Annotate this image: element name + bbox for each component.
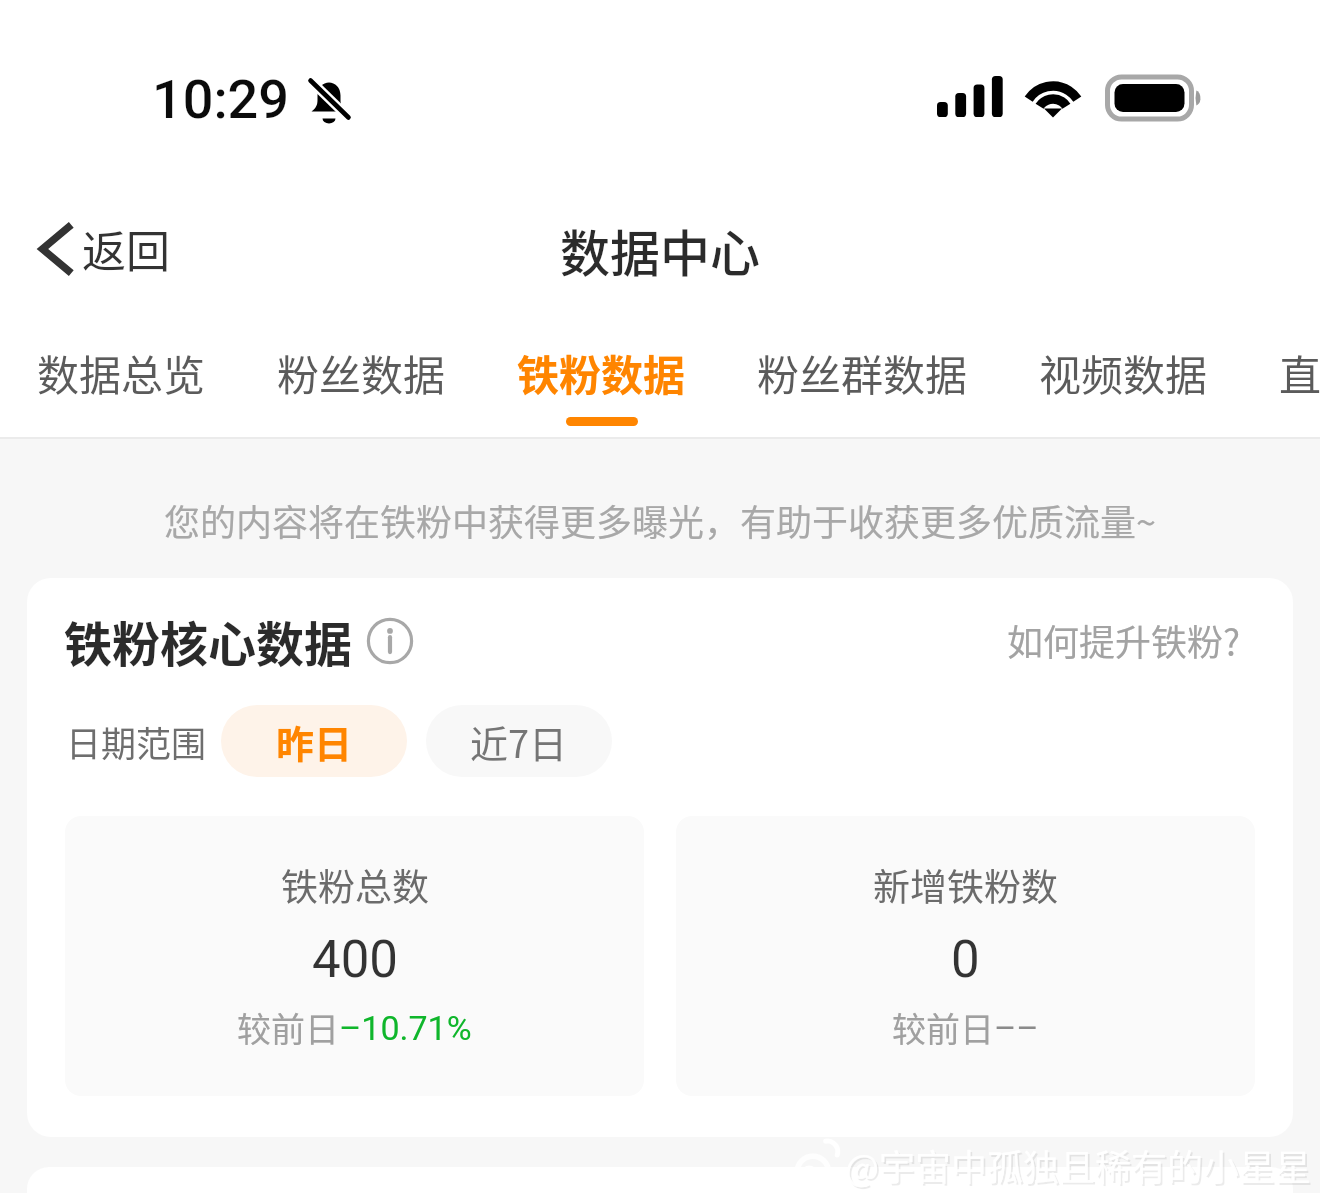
button[interactable]: 铁粉总数 — [65, 816, 644, 1096]
staticText: 粉丝群数据 — [757, 342, 968, 403]
staticText: 昨日 — [276, 714, 353, 769]
button[interactable]: 数据总览 — [37, 342, 206, 415]
staticText: 如何提升铁粉? — [1007, 614, 1241, 666]
button[interactable]: 粉丝群数据 — [757, 342, 968, 415]
button[interactable]: 返回 — [30, 212, 176, 286]
staticText: 直播数据 — [1279, 342, 1320, 403]
button[interactable]: 昨日 — [221, 705, 407, 777]
staticText: 铁粉核心数据 — [64, 606, 353, 676]
button[interactable]: 新增铁粉数 — [676, 816, 1255, 1096]
staticText: 返回 — [82, 217, 170, 281]
button[interactable]: 视频数据 — [1039, 342, 1208, 415]
staticText: 铁粉数据 — [517, 342, 686, 403]
staticText: 数据中心 — [0, 214, 1320, 286]
staticText: 您的内容将在铁粉中获得更多曝光，有助于收获更多优质流量~ — [0, 494, 1320, 546]
staticText: @宇宙中孤独且稀有的小星星 — [847, 1141, 1314, 1193]
button[interactable]: 直播数据 — [1279, 342, 1320, 415]
button[interactable]: 近7日 — [426, 705, 612, 777]
staticText: @宇宙中孤独且稀有的小星星 — [845, 1139, 1312, 1191]
staticText: 日期范围 — [66, 716, 207, 767]
button[interactable]: 如何提升铁粉? — [999, 606, 1249, 674]
staticText: –10.71% — [339, 1008, 472, 1048]
staticText: 新增铁粉数 — [873, 858, 1058, 912]
button[interactable]: 铁粉数据 — [517, 342, 686, 438]
staticText: 0 — [951, 930, 980, 990]
staticText: 400 — [312, 930, 398, 990]
staticText: 铁粉总数 — [281, 858, 429, 912]
staticText: 较前日 — [237, 1003, 339, 1052]
staticText: 粉丝数据 — [277, 342, 446, 403]
staticText: 10:29 — [152, 68, 290, 131]
button[interactable]: 粉丝数据 — [277, 342, 446, 415]
staticText: 数据总览 — [37, 342, 206, 403]
staticText: 视频数据 — [1039, 342, 1208, 403]
button[interactable]: 关于铁粉核心数据 — [366, 617, 414, 665]
staticText: –– — [994, 1008, 1039, 1048]
staticText: 近7日 — [470, 714, 568, 769]
staticText: 较前日 — [892, 1003, 994, 1052]
